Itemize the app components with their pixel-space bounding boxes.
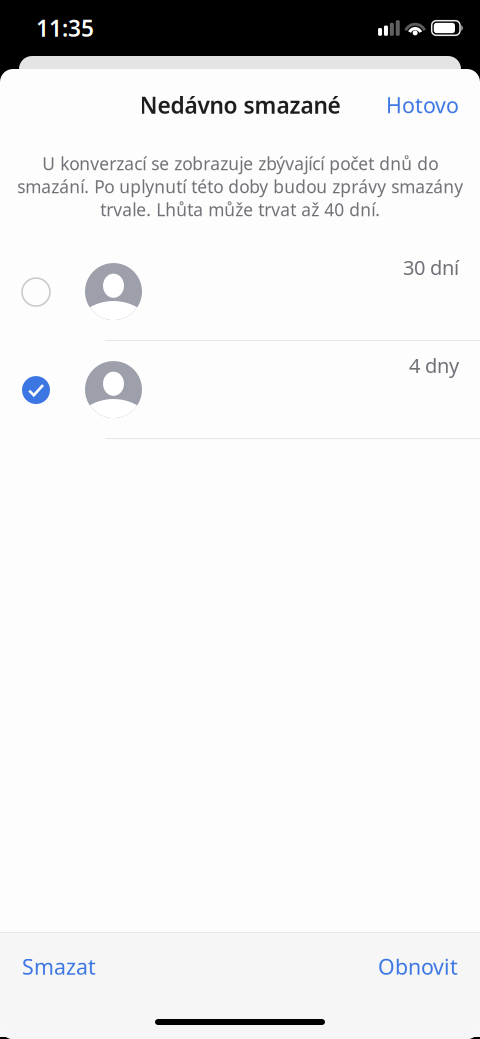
button[interactable]: Obnovit [378,952,480,981]
staticText: Smazat [22,952,96,981]
staticText: 30 dní [403,254,459,281]
button[interactable]: 30 dní [0,243,480,341]
staticText: Nedávno smazané [139,90,340,120]
staticText: 11:35 [36,13,94,43]
staticText: 4 dny [409,352,459,379]
button[interactable]: Smazat [0,952,96,981]
button[interactable]: Hotovo [386,91,480,119]
staticText: Obnovit [378,952,458,981]
staticText: Hotovo [386,91,459,119]
button[interactable]: 4 dny [0,341,480,439]
staticText: U konverzací se zobrazuje zbývající poče… [17,152,463,221]
